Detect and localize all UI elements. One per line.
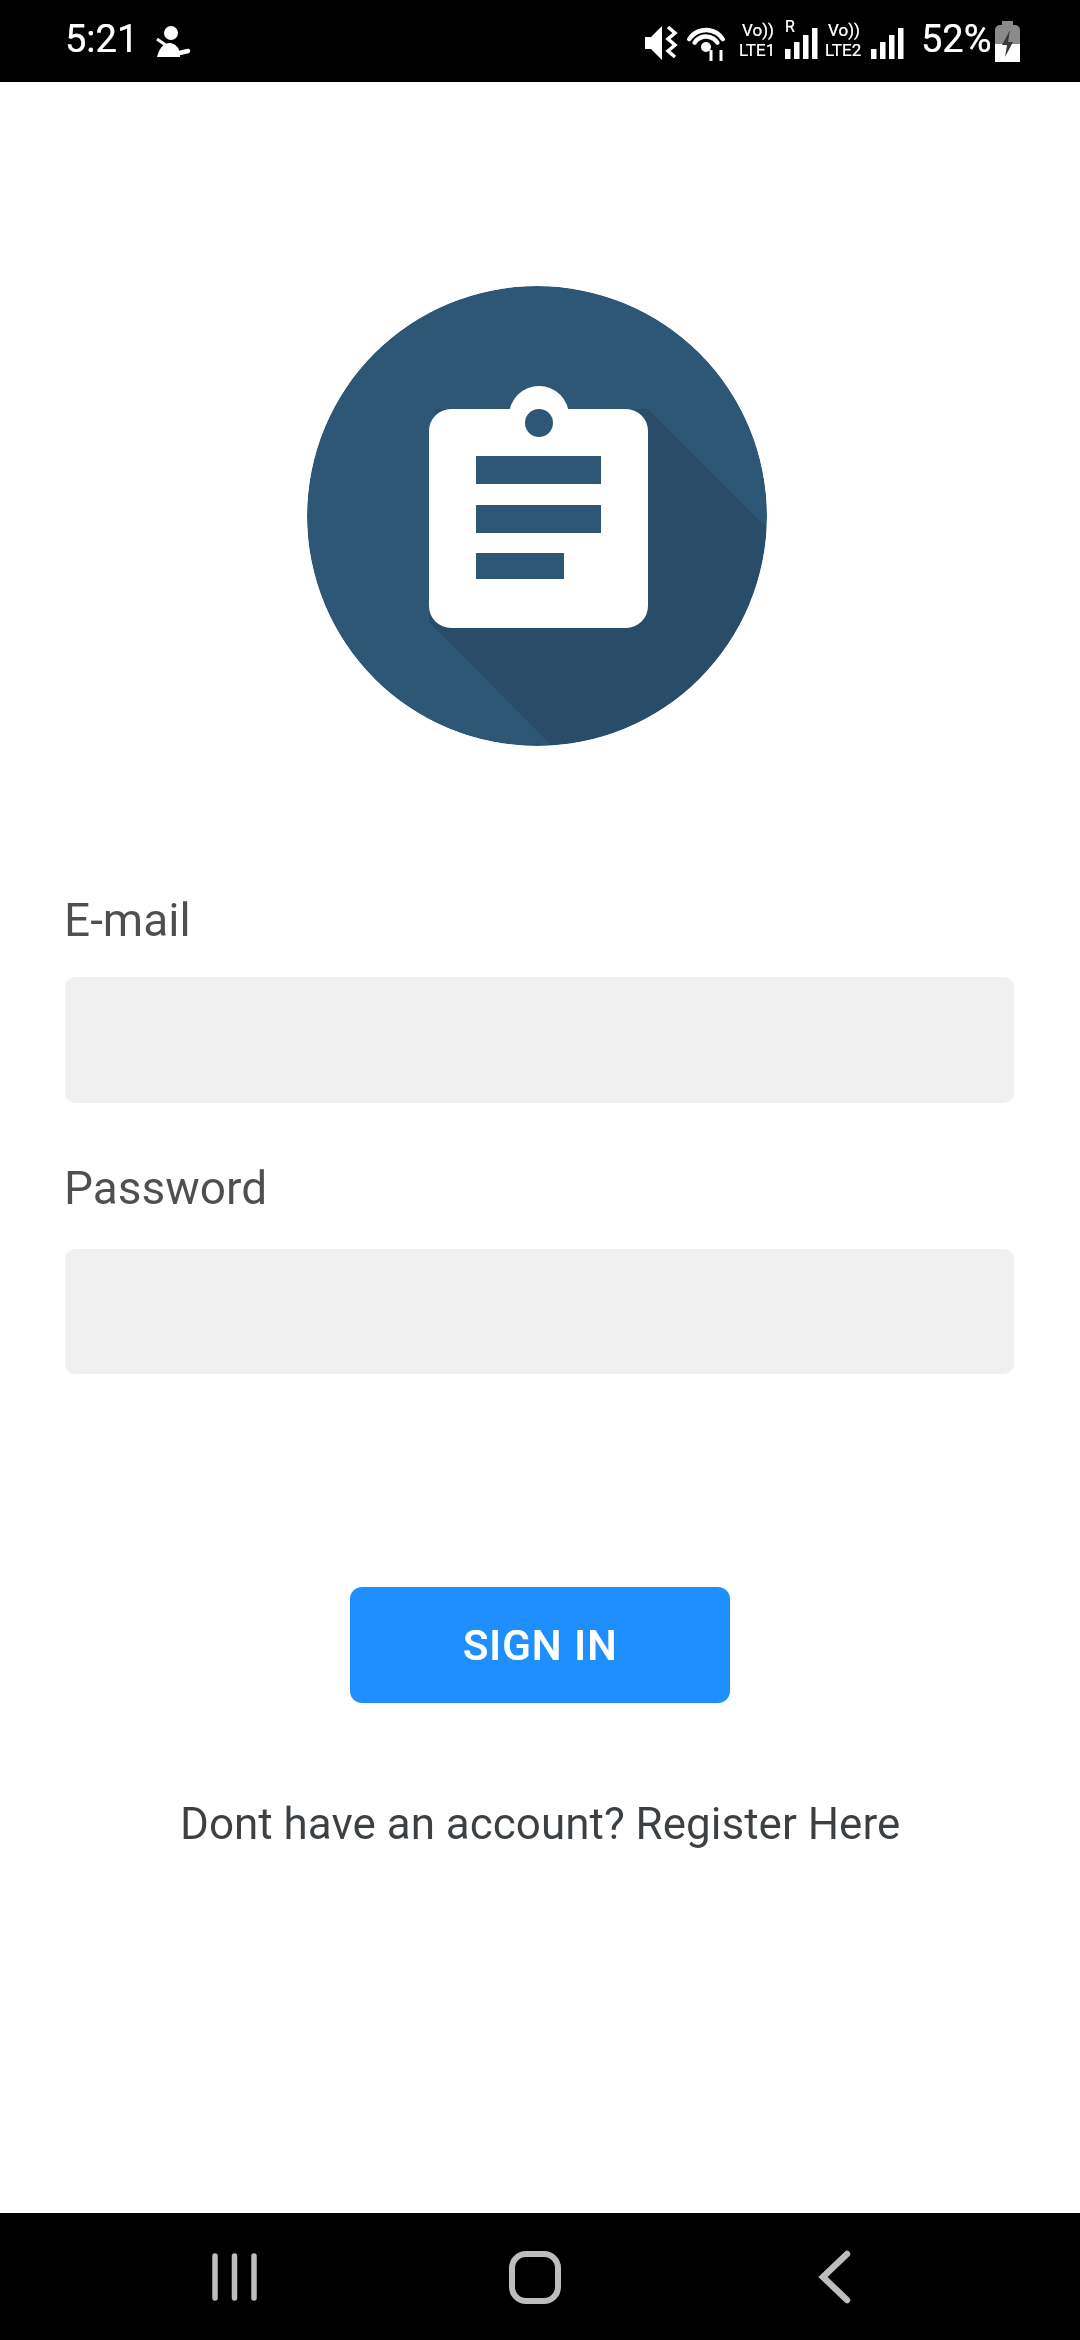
button[interactable] [480, 2243, 590, 2313]
staticText: Vo)) [742, 20, 774, 40]
staticText: 52% [921, 17, 992, 62]
staticText: Password [64, 1161, 268, 1215]
button[interactable] [180, 2243, 290, 2313]
staticText: R [785, 17, 795, 36]
button[interactable]: SIGN IN [350, 1587, 730, 1703]
staticText: Vo)) [828, 20, 860, 40]
staticText: LTE1 [739, 40, 776, 60]
staticText: SIGN IN [463, 1621, 618, 1670]
staticText: E-mail [64, 893, 191, 947]
staticText: LTE2 [825, 40, 862, 60]
button[interactable]: Dont have an account? Register Here [180, 1798, 901, 1850]
button[interactable] [790, 2243, 900, 2313]
staticText: 5:21 [65, 17, 139, 62]
